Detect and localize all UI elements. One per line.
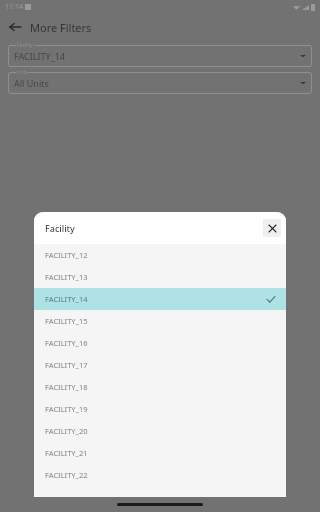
staticText: FACILITY_18 <box>45 382 88 392</box>
staticText: More Filters <box>30 20 92 35</box>
button[interactable]: FACILITY_17 <box>34 354 286 376</box>
staticText: Facility <box>45 222 75 234</box>
button[interactable]: FACILITY_15 <box>34 310 286 332</box>
button[interactable]: FACILITY_18 <box>34 376 286 398</box>
button[interactable]: FACILITY_13 <box>34 266 286 288</box>
staticText: FACILITY_16 <box>45 338 88 348</box>
staticText: 11:14 <box>5 2 23 12</box>
staticText: FACILITY_19 <box>45 404 88 414</box>
staticText: Facility <box>17 42 34 49</box>
staticText: FACILITY_13 <box>45 272 88 282</box>
staticText: FACILITY_22 <box>45 470 88 480</box>
button[interactable]: Back <box>4 16 26 38</box>
staticText: All Units <box>14 77 49 89</box>
staticText: Unit <box>17 69 27 76</box>
button[interactable]: FACILITY_16 <box>34 332 286 354</box>
button[interactable]: Facility <box>8 45 312 67</box>
button[interactable]: Close <box>263 219 281 237</box>
staticText: FACILITY_21 <box>45 448 88 458</box>
button[interactable]: FACILITY_12 <box>34 244 286 266</box>
button[interactable]: FACILITY_21 <box>34 442 286 464</box>
staticText: FACILITY_17 <box>45 360 88 370</box>
button[interactable]: Unit <box>8 72 312 94</box>
staticText: FACILITY_20 <box>45 426 88 436</box>
staticText: FACILITY_14 <box>14 50 65 62</box>
button[interactable]: FACILITY_22 <box>34 464 286 486</box>
staticText: FACILITY_12 <box>45 250 88 260</box>
button[interactable]: FACILITY_14 <box>34 288 286 310</box>
button[interactable]: FACILITY_20 <box>34 420 286 442</box>
staticText: FACILITY_15 <box>45 316 88 326</box>
staticText: FACILITY_14 <box>45 294 88 304</box>
button[interactable]: FACILITY_19 <box>34 398 286 420</box>
